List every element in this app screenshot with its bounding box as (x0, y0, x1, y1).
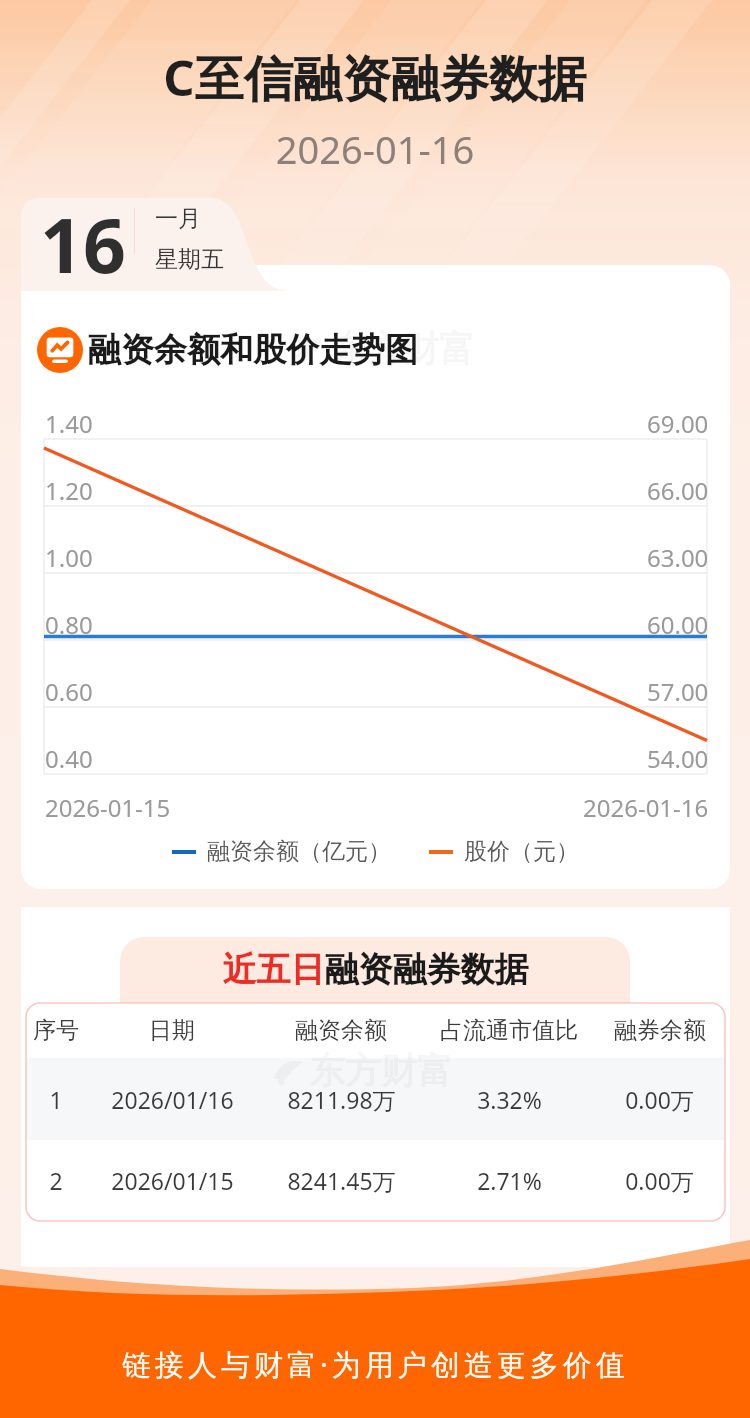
staticText: 近五日融资融券数据 (21, 948, 730, 991)
staticText: C至信融资融券数据 (0, 44, 750, 111)
staticText: 1.20 (45, 474, 93, 507)
button[interactable]: 1 (26, 1058, 725, 1140)
staticText: 0.80 (45, 608, 93, 641)
staticText: 一月 (155, 204, 201, 233)
button[interactable]: 2 (26, 1140, 725, 1221)
staticText: 链接人与财富·为用户创造更多价值 (122, 1344, 629, 1384)
staticText: 2026-01-15 (45, 791, 171, 824)
staticText: 8241.45万 (287, 1165, 396, 1196)
staticText: 星期五 (155, 245, 224, 274)
staticText: 东方财富 (331, 326, 475, 371)
staticText: 66.00 (647, 474, 709, 507)
staticText: 融券余额 (614, 1016, 706, 1045)
staticText: 股价（元） (464, 837, 579, 866)
staticText: 57.00 (647, 675, 709, 708)
staticText: 1 (49, 1084, 63, 1115)
staticText: 60.00 (647, 608, 709, 641)
staticText: 2.71% (477, 1165, 542, 1196)
staticText: 0.00万 (625, 1165, 694, 1196)
staticText: 2026/01/15 (111, 1165, 234, 1196)
staticText: 占流通市值比 (440, 1016, 578, 1045)
staticText: 54.00 (647, 742, 709, 775)
staticText: 2026/01/16 (111, 1084, 234, 1115)
staticText: 16 (40, 193, 126, 286)
staticText: 0.40 (45, 742, 93, 775)
staticText: 融资余额（亿元） (207, 837, 391, 866)
staticText: 0.60 (45, 675, 93, 708)
staticText: 63.00 (647, 541, 709, 574)
staticText: 1.40 (45, 407, 93, 440)
staticText: 8211.98万 (287, 1084, 396, 1115)
staticText: 69.00 (647, 407, 709, 440)
staticText: 2026-01-16 (0, 123, 750, 175)
staticText: 序号 (33, 1016, 79, 1045)
staticText: 日期 (149, 1016, 195, 1045)
staticText: 融资余额和股价走势图 (88, 329, 418, 371)
button[interactable]: 走势图 (37, 327, 83, 373)
staticText: 3.32% (477, 1084, 542, 1115)
staticText: 2 (49, 1165, 63, 1196)
button[interactable]: 序号 (26, 1003, 725, 1058)
staticText: 融资余额 (295, 1016, 387, 1045)
staticText: 2026-01-16 (583, 791, 709, 824)
staticText: 东方财富 (309, 1048, 453, 1093)
staticText: 1.00 (45, 541, 93, 574)
staticText: 0.00万 (625, 1084, 694, 1115)
